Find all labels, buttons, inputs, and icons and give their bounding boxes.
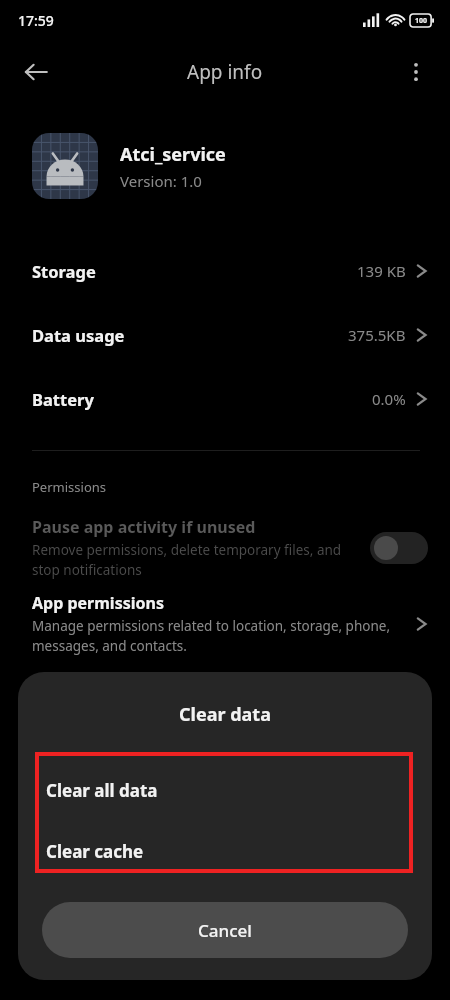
staticText: App info — [187, 59, 263, 85]
staticText: Pause app activity if unused — [32, 516, 256, 538]
button[interactable]: Clear all data — [35, 766, 413, 814]
staticText: Version: 1.0 — [120, 171, 202, 191]
staticText: Remove permissions, delete temporary fil… — [32, 541, 360, 579]
button[interactable]: Storage — [0, 248, 450, 294]
staticText: Clear cache — [46, 840, 144, 863]
staticText: Storage — [32, 260, 357, 282]
staticText: 375.5KB — [348, 325, 406, 345]
staticText: 139 KB — [357, 261, 406, 281]
button[interactable]: Pause app activity toggle — [370, 532, 428, 564]
button[interactable]: Clear cache — [35, 830, 413, 872]
button[interactable]: Data usage — [0, 312, 450, 358]
staticText: 17:59 — [18, 11, 54, 30]
staticText: Atci_service — [120, 142, 226, 167]
staticText: Permissions — [32, 478, 107, 496]
button[interactable]: App permissions — [0, 592, 450, 655]
staticText: 0.0% — [372, 389, 406, 409]
button[interactable]: Back — [14, 50, 58, 94]
button[interactable]: Battery — [0, 376, 450, 422]
staticText: Data usage — [32, 324, 348, 346]
staticText: Clear data — [18, 702, 432, 727]
staticText: Cancel — [198, 919, 252, 942]
button[interactable]: Pause app activity if unused — [0, 510, 450, 585]
button[interactable]: More options — [394, 50, 438, 94]
staticText: 100 — [415, 16, 428, 26]
staticText: Battery — [32, 388, 372, 410]
staticText: Manage permissions related to location, … — [32, 617, 408, 655]
staticText: Clear all data — [46, 779, 158, 802]
staticText: App permissions — [32, 592, 164, 614]
button[interactable]: Cancel — [42, 902, 408, 958]
